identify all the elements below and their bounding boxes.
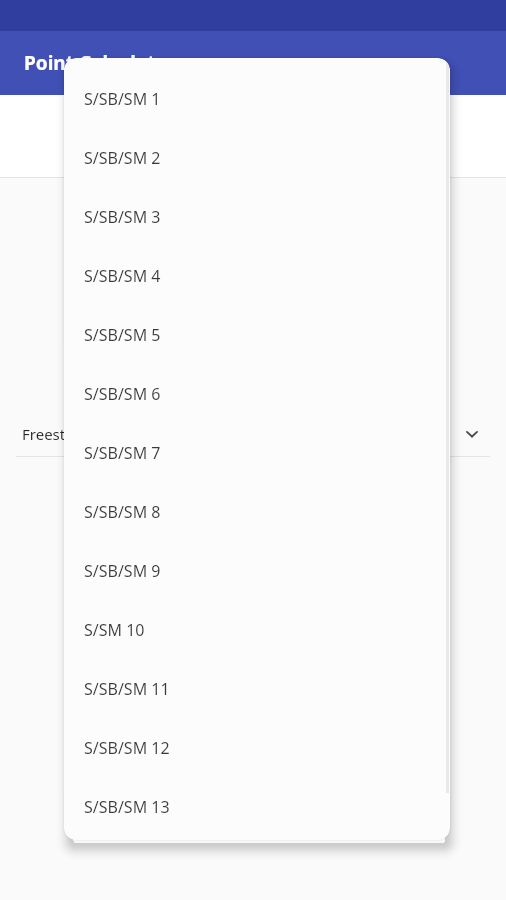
staticText: S/SB/SM 4: [84, 265, 161, 287]
staticText: S/SB/SM 9: [84, 560, 161, 582]
button[interactable]: Freestyle Zone: [253, 95, 506, 177]
button[interactable]: S/SB/SM 11: [64, 659, 450, 718]
staticText: S/SM 10: [84, 619, 145, 641]
button[interactable]: S/SB/SM 3: [64, 187, 450, 246]
button[interactable]: S/SB/SM 1: [64, 69, 450, 128]
staticText: S/SB/SM 6: [84, 383, 161, 405]
staticText: Freestyle: [22, 424, 460, 444]
staticText: S/SB/SM 1: [84, 88, 161, 110]
other: Expand dropdown: [460, 422, 484, 446]
staticText: S/SB/SM 12: [84, 737, 170, 759]
staticText: Point Calculator: [24, 50, 176, 76]
button[interactable]: S/SB/SM 12: [64, 718, 450, 777]
button[interactable]: S/SB/SM 7: [64, 423, 450, 482]
button[interactable]: S/SM 10: [64, 600, 450, 659]
staticText: S/SB/SM 2: [84, 147, 161, 169]
button[interactable]: S/SB/SM 9: [64, 541, 450, 600]
button[interactable]: S/SB/SM 13: [64, 777, 450, 836]
button[interactable]: S/SB/SM 2: [64, 128, 450, 187]
staticText: S/SB/SM 13: [84, 796, 170, 818]
staticText: S/SB/SM 3: [84, 206, 161, 228]
button[interactable]: Point Calculator: [0, 95, 253, 177]
staticText: S/SB/SM 8: [84, 501, 161, 523]
button[interactable]: Freestyle: [0, 412, 506, 456]
staticText: S/SB/SM 11: [84, 678, 170, 700]
button[interactable]: S/SB/SM 8: [64, 482, 450, 541]
staticText: S/SB/SM 7: [84, 442, 161, 464]
button[interactable]: S/SB/SM 5: [64, 305, 450, 364]
button[interactable]: S/SB/SM 4: [64, 246, 450, 305]
staticText: S/SB/SM 5: [84, 324, 161, 346]
button[interactable]: S/SB/SM 6: [64, 364, 450, 423]
